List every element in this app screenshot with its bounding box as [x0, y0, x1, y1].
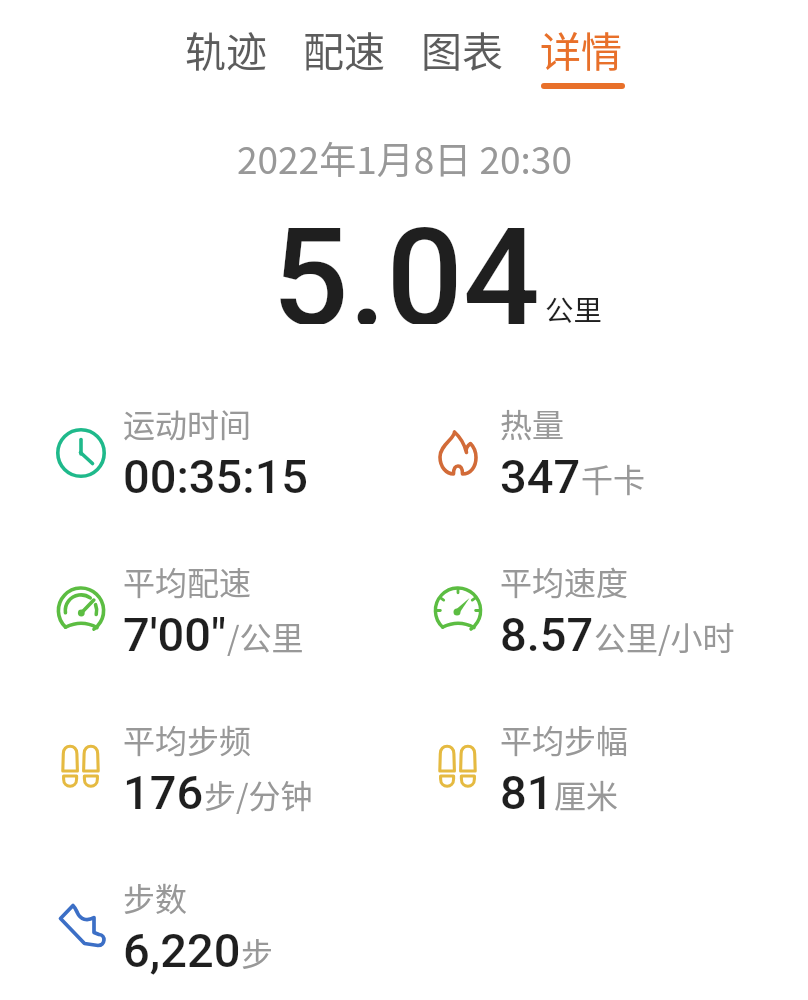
- staticText: 步: [241, 929, 274, 975]
- other: Duration: [51, 423, 111, 483]
- other: Average speed: [428, 581, 488, 641]
- staticText: 8.57: [500, 607, 594, 662]
- staticText: /公里: [227, 613, 304, 659]
- staticText: 详情: [540, 19, 622, 78]
- staticText: 图表: [421, 19, 503, 78]
- other: Calories: [428, 423, 488, 483]
- staticText: 5.04: [272, 200, 540, 324]
- staticText: 热量: [500, 400, 565, 446]
- button[interactable]: Steps: [377, 715, 808, 873]
- button[interactable]: 图表: [417, 19, 507, 78]
- staticText: 步/分钟: [204, 771, 313, 817]
- staticText: 176: [123, 765, 204, 820]
- button[interactable]: Average pace: [0, 557, 377, 715]
- staticText: 7'00": [123, 607, 227, 662]
- other: Average pace: [51, 581, 111, 641]
- button[interactable]: 轨迹: [181, 19, 271, 78]
- staticText: 千卡: [581, 455, 646, 501]
- staticText: 公里/小时: [594, 613, 735, 659]
- staticText: 347: [500, 449, 581, 504]
- other: Steps: [428, 739, 488, 799]
- button[interactable]: Steps: [0, 715, 377, 873]
- button[interactable]: Step count: [0, 873, 377, 1000]
- button[interactable]: Duration: [0, 399, 377, 557]
- staticText: 厘米: [554, 771, 619, 817]
- staticText: 平均步频: [123, 716, 252, 762]
- button[interactable]: 详情: [535, 19, 627, 89]
- other: Step count: [51, 897, 111, 957]
- button[interactable]: Average speed: [377, 557, 808, 715]
- other: Steps: [51, 739, 111, 799]
- staticText: 轨迹: [185, 19, 267, 78]
- button[interactable]: Calories: [377, 399, 808, 557]
- button[interactable]: 配速: [299, 19, 389, 78]
- staticText: 00:35:15: [123, 449, 309, 504]
- staticText: 步数: [123, 874, 188, 920]
- staticText: 6,220: [123, 923, 241, 978]
- staticText: 配速: [303, 19, 385, 78]
- staticText: 平均步幅: [500, 716, 629, 762]
- staticText: 平均速度: [500, 558, 629, 604]
- staticText: 2022年1月8日 20:30: [237, 131, 572, 185]
- staticText: 运动时间: [123, 400, 252, 446]
- staticText: 公里: [545, 288, 603, 329]
- staticText: 81: [500, 765, 554, 820]
- staticText: 平均配速: [123, 558, 252, 604]
